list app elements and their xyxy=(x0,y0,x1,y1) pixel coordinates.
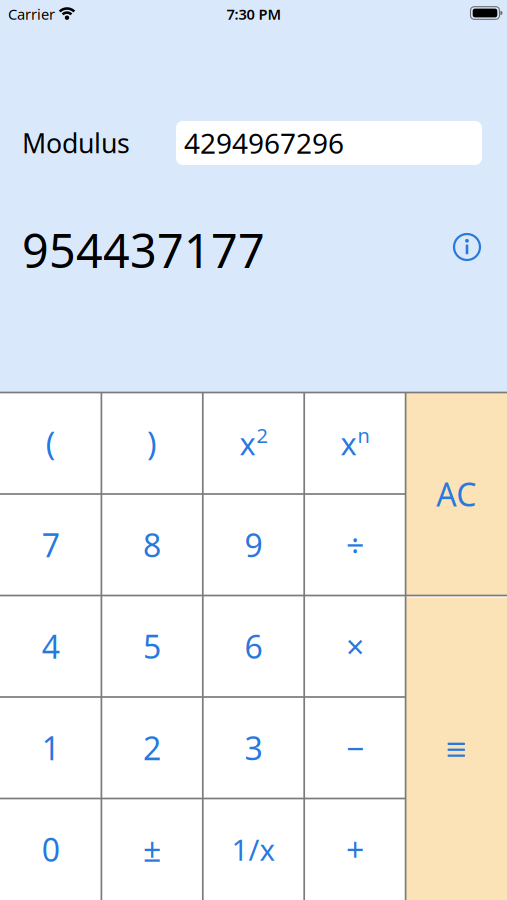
button[interactable]: Modulus value xyxy=(176,121,482,165)
staticText: x xyxy=(239,423,255,464)
button[interactable]: 3 xyxy=(203,697,304,798)
staticText: 3 xyxy=(244,726,262,769)
button[interactable]: ( xyxy=(0,392,101,494)
button[interactable]: 6 xyxy=(203,595,304,697)
staticText: 4 xyxy=(42,625,60,667)
staticText: 4294967296 xyxy=(184,124,344,162)
staticText: 9 xyxy=(244,523,262,566)
staticText: 2 xyxy=(256,422,267,449)
staticText: 954437177 xyxy=(22,219,265,281)
staticText: − xyxy=(346,726,364,769)
staticText: 5 xyxy=(143,625,161,667)
button[interactable]: 5 xyxy=(101,595,203,697)
button[interactable]: 1 xyxy=(0,697,101,798)
staticText: 6 xyxy=(244,625,262,667)
button[interactable]: 1/x xyxy=(203,798,304,900)
button[interactable]: 2 xyxy=(101,697,203,798)
button[interactable]: 7 xyxy=(0,494,101,595)
button[interactable]: ) xyxy=(101,392,203,494)
staticText: ( xyxy=(46,422,56,464)
button[interactable]: ± xyxy=(101,798,203,900)
staticText: Carrier xyxy=(8,4,55,24)
button[interactable]: AC xyxy=(406,392,507,595)
staticText: 0 xyxy=(42,828,60,870)
button[interactable]: + xyxy=(304,798,406,900)
staticText: + xyxy=(346,828,364,870)
button[interactable]: Info xyxy=(452,232,482,262)
staticText: ± xyxy=(143,828,161,870)
button[interactable]: 4 xyxy=(0,595,101,697)
button[interactable]: ÷ xyxy=(304,494,406,595)
staticText: n xyxy=(357,422,369,449)
staticText: ) xyxy=(147,422,157,464)
button[interactable]: Congruence xyxy=(406,597,507,900)
staticText: AC xyxy=(436,473,476,515)
staticText: 8 xyxy=(143,523,161,566)
staticText: 1/x xyxy=(231,830,275,869)
button[interactable]: 0 xyxy=(0,798,101,900)
button[interactable]: x xyxy=(203,392,304,494)
button[interactable]: x xyxy=(304,392,406,494)
staticText: 7 xyxy=(42,523,60,566)
button[interactable]: − xyxy=(304,697,406,798)
button[interactable]: 8 xyxy=(101,494,203,595)
staticText: 1 xyxy=(42,726,60,769)
button[interactable]: 9 xyxy=(203,494,304,595)
button[interactable]: × xyxy=(304,595,406,697)
staticText: ÷ xyxy=(346,523,364,566)
staticText: x xyxy=(340,423,356,464)
staticText: 2 xyxy=(143,726,161,769)
staticText: Modulus xyxy=(22,125,130,161)
staticText: 7:30 PM xyxy=(226,4,281,24)
staticText: × xyxy=(346,625,364,667)
